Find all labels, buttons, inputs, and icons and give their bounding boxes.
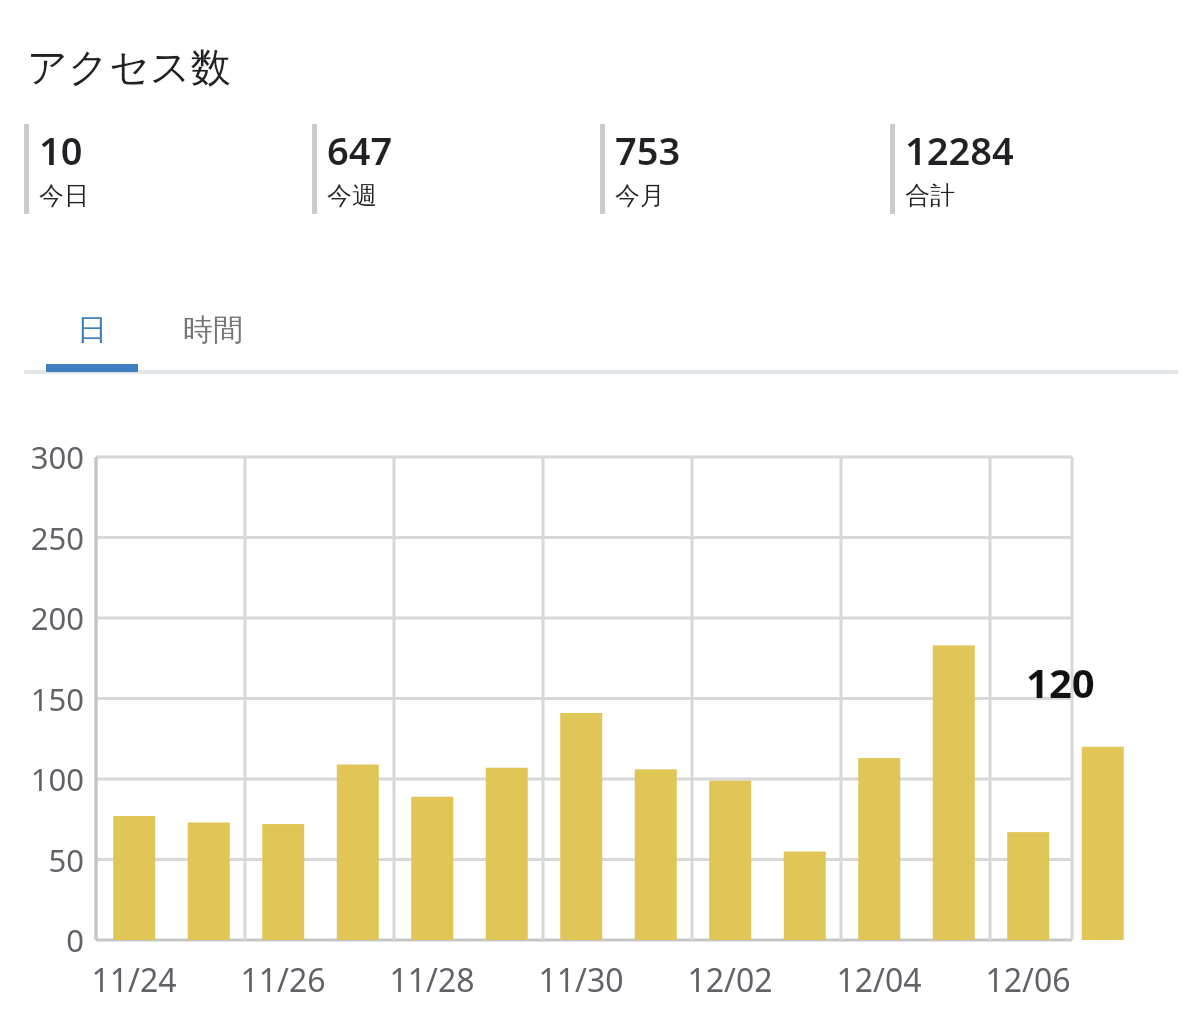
staticText: 今週: [327, 180, 377, 211]
staticText: 今日: [39, 180, 89, 211]
staticText: 200: [30, 597, 84, 639]
button[interactable]: 12284: [890, 124, 1160, 214]
staticText: 11/24: [91, 958, 177, 1002]
button[interactable]: 日: [24, 288, 160, 372]
staticText: 300: [30, 436, 84, 478]
staticText: 120: [1026, 655, 1095, 709]
staticText: 今月: [615, 180, 665, 211]
staticText: 12/06: [985, 958, 1071, 1002]
staticText: 0: [66, 919, 84, 961]
staticText: 11/28: [389, 958, 475, 1002]
staticText: 250: [30, 517, 84, 559]
staticText: 647: [327, 124, 393, 176]
staticText: 753: [615, 124, 681, 176]
staticText: アクセス数: [27, 42, 231, 92]
staticText: 12284: [905, 124, 1014, 176]
staticText: 時間: [183, 311, 243, 349]
staticText: 12/04: [836, 958, 922, 1002]
staticText: 10: [39, 124, 83, 176]
staticText: 11/30: [538, 958, 624, 1002]
button[interactable]: 時間: [152, 288, 274, 372]
button[interactable]: 753: [600, 124, 870, 214]
staticText: 100: [30, 758, 84, 800]
button[interactable]: 10: [24, 124, 294, 214]
staticText: 合計: [905, 180, 955, 211]
staticText: 50: [48, 839, 84, 881]
staticText: 12/02: [687, 958, 773, 1002]
staticText: 150: [30, 678, 84, 720]
staticText: 11/26: [240, 958, 326, 1002]
staticText: 日: [77, 311, 107, 349]
button[interactable]: 647: [312, 124, 582, 214]
